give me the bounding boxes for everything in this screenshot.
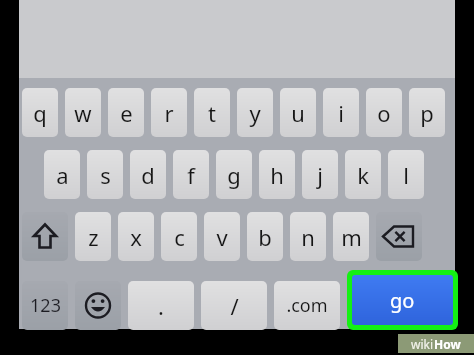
staticText: d	[141, 160, 155, 190]
button[interactable]: n	[290, 212, 326, 261]
button[interactable]: 123	[22, 281, 68, 330]
button[interactable]: x	[118, 212, 154, 261]
staticText: /	[230, 291, 239, 321]
staticText: f	[187, 160, 195, 190]
staticText: v	[216, 222, 228, 252]
staticText: wiki	[411, 336, 434, 352]
staticText: c	[174, 222, 185, 252]
staticText: 123	[30, 293, 61, 318]
button[interactable]: .com	[274, 281, 340, 330]
staticText: z	[88, 222, 99, 252]
staticText: How	[434, 336, 461, 352]
button[interactable]: f	[173, 150, 209, 199]
button[interactable]: b	[247, 212, 283, 261]
button[interactable]: /	[201, 281, 267, 330]
button[interactable]: h	[259, 150, 295, 199]
staticText: a	[56, 160, 69, 190]
button[interactable]: p	[409, 88, 445, 137]
staticText: u	[291, 98, 305, 128]
button[interactable]: k	[345, 150, 381, 199]
staticText: e	[120, 98, 133, 128]
button[interactable]: a	[44, 150, 80, 199]
staticText: j	[317, 160, 323, 190]
button[interactable]: e	[108, 88, 144, 137]
button[interactable]: g	[216, 150, 252, 199]
button[interactable]: q	[22, 88, 58, 137]
button[interactable]: z	[75, 212, 111, 261]
staticText: x	[130, 222, 142, 252]
button[interactable]: s	[87, 150, 123, 199]
button[interactable]: w	[65, 88, 101, 137]
staticText: h	[270, 160, 284, 190]
button[interactable]: c	[161, 212, 197, 261]
staticText: i	[338, 98, 344, 128]
button[interactable]: o	[366, 88, 402, 137]
staticText: .	[158, 291, 164, 321]
button[interactable]: go	[352, 275, 453, 325]
button[interactable]: Emoji	[75, 281, 121, 330]
button[interactable]: Shift	[22, 212, 68, 261]
staticText: go	[390, 287, 415, 314]
staticText: t	[208, 98, 216, 128]
button[interactable]: v	[204, 212, 240, 261]
staticText: b	[258, 222, 272, 252]
staticText: q	[33, 98, 47, 128]
staticText: g	[227, 160, 241, 190]
staticText: k	[357, 160, 369, 190]
staticText: .com	[286, 293, 328, 318]
button[interactable]: j	[302, 150, 338, 199]
button[interactable]: l	[388, 150, 424, 199]
staticText: s	[100, 160, 111, 190]
button[interactable]: r	[151, 88, 187, 137]
staticText: p	[420, 98, 434, 128]
button[interactable]: .	[128, 281, 194, 330]
button[interactable]: Backspace	[376, 212, 422, 261]
button[interactable]: y	[237, 88, 273, 137]
staticText: o	[377, 98, 391, 128]
staticText: w	[74, 98, 92, 128]
button[interactable]: m	[333, 212, 369, 261]
staticText: n	[301, 222, 315, 252]
button[interactable]: i	[323, 88, 359, 137]
staticText: l	[403, 160, 409, 190]
staticText: m	[341, 222, 362, 252]
staticText: r	[164, 98, 174, 128]
staticText: y	[249, 98, 261, 128]
button[interactable]: t	[194, 88, 230, 137]
button[interactable]: u	[280, 88, 316, 137]
button[interactable]: d	[130, 150, 166, 199]
